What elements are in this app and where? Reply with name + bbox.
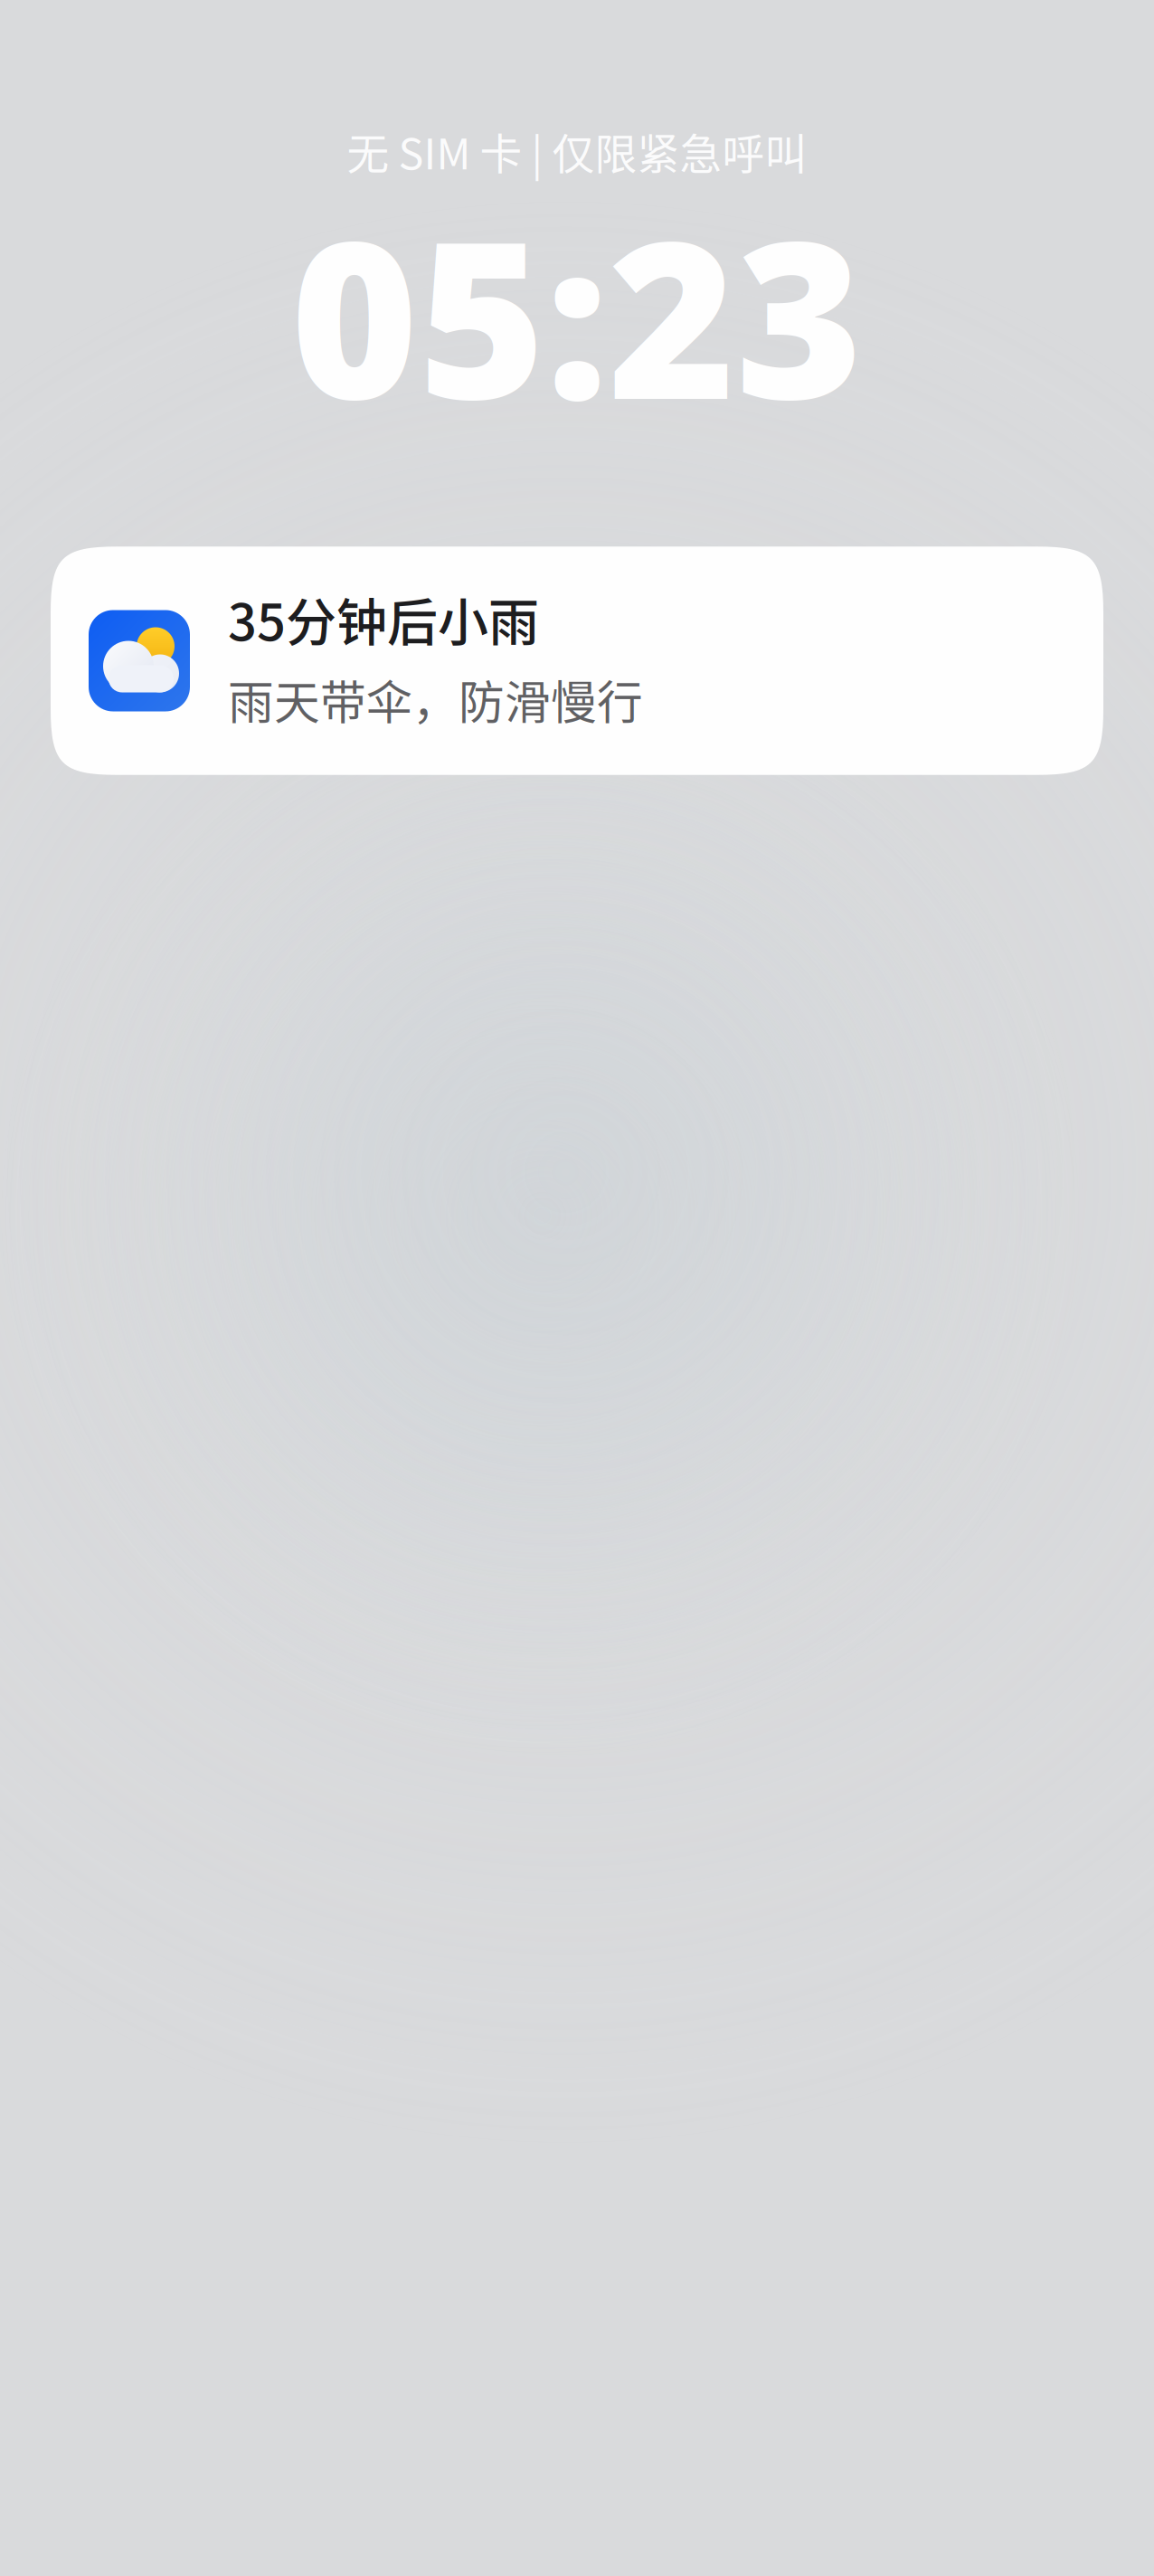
staticText: 雨天带伞，防滑慢行 xyxy=(228,666,643,732)
staticText: 05:23 xyxy=(291,171,863,459)
staticText: 35分钟后小雨 xyxy=(228,582,539,655)
button[interactable]: 35分钟后小雨 xyxy=(51,547,1103,775)
staticText: 无 SIM 卡 | 仅限紧急呼叫 xyxy=(347,120,807,181)
